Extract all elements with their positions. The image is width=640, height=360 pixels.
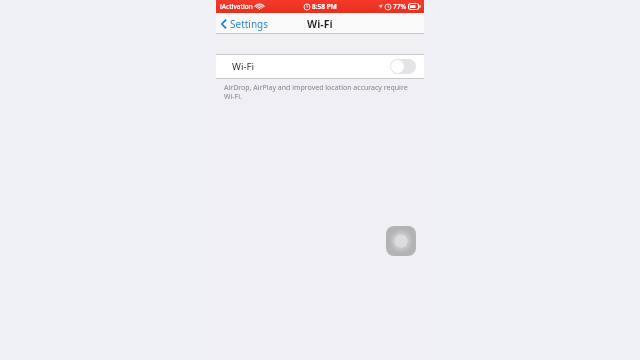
staticText: 77% (393, 2, 406, 11)
staticText: Settings (230, 17, 269, 31)
staticText: 8:58 PM (312, 2, 337, 11)
button[interactable]: Wi-Fi (216, 55, 424, 78)
button[interactable]: AssistiveTouch (386, 226, 416, 256)
staticText: Wi-Fi (232, 60, 255, 73)
button[interactable]: Wi-Fi off (390, 59, 416, 74)
button[interactable]: Settings (216, 14, 275, 34)
staticText: iActivation (220, 2, 253, 11)
staticText: AirDrop, AirPlay and improved location a… (224, 83, 414, 101)
staticText: Wi-Fi (307, 17, 333, 31)
